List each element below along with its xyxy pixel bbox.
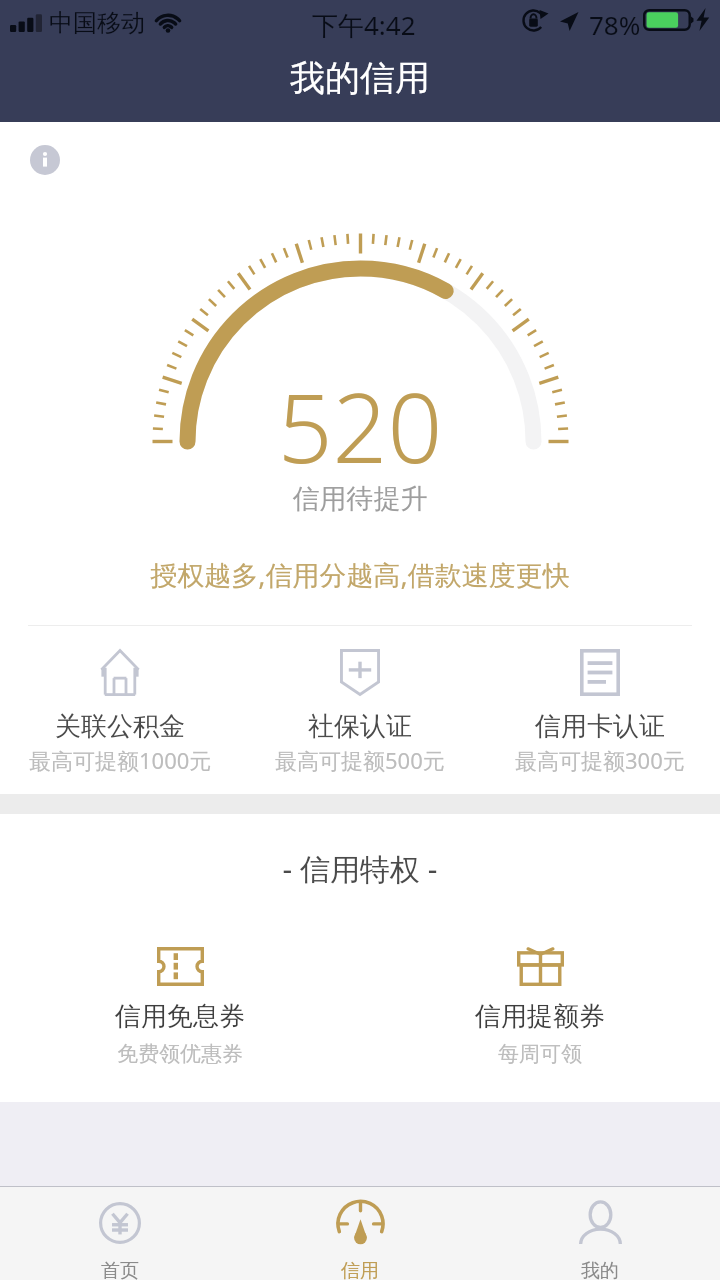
staticText: 信用 [341, 1259, 379, 1280]
staticText: 中国移动 [49, 8, 145, 38]
staticText: 每周可领 [498, 1041, 582, 1067]
button[interactable]: 信用 [240, 1187, 480, 1280]
staticText: 最高可提额500元 [275, 745, 445, 775]
staticText: 授权越多,信用分越高,借款速度更快 [0, 556, 720, 593]
button[interactable]: 我的 [480, 1187, 720, 1280]
staticText: 78% [589, 7, 641, 42]
button[interactable]: 社保认证 [240, 649, 480, 775]
staticText: 关联公积金 [55, 710, 185, 743]
button[interactable]: Info [30, 145, 60, 175]
staticText: 信用免息券 [115, 1000, 245, 1033]
staticText: 社保认证 [308, 710, 412, 743]
button[interactable]: 信用免息券 [0, 947, 360, 1067]
button[interactable]: 首页 [0, 1187, 240, 1280]
staticText: 我的 [581, 1259, 619, 1280]
button[interactable]: 关联公积金 [0, 649, 240, 775]
staticText: 下午4:42 [312, 7, 416, 43]
staticText: 信用卡认证 [535, 710, 665, 743]
button[interactable]: 信用提额券 [360, 947, 720, 1067]
staticText: 免费领优惠券 [117, 1041, 243, 1067]
staticText: 首页 [101, 1259, 139, 1280]
staticText: 最高可提额1000元 [29, 745, 212, 775]
staticText: - 信用特权 - [0, 848, 720, 889]
staticText: 我的信用 [290, 56, 430, 100]
button[interactable]: 信用卡认证 [480, 649, 720, 775]
staticText: 信用待提升 [0, 482, 720, 516]
staticText: 520 [0, 360, 720, 491]
staticText: 最高可提额300元 [515, 745, 685, 775]
staticText: 信用提额券 [475, 1000, 605, 1033]
